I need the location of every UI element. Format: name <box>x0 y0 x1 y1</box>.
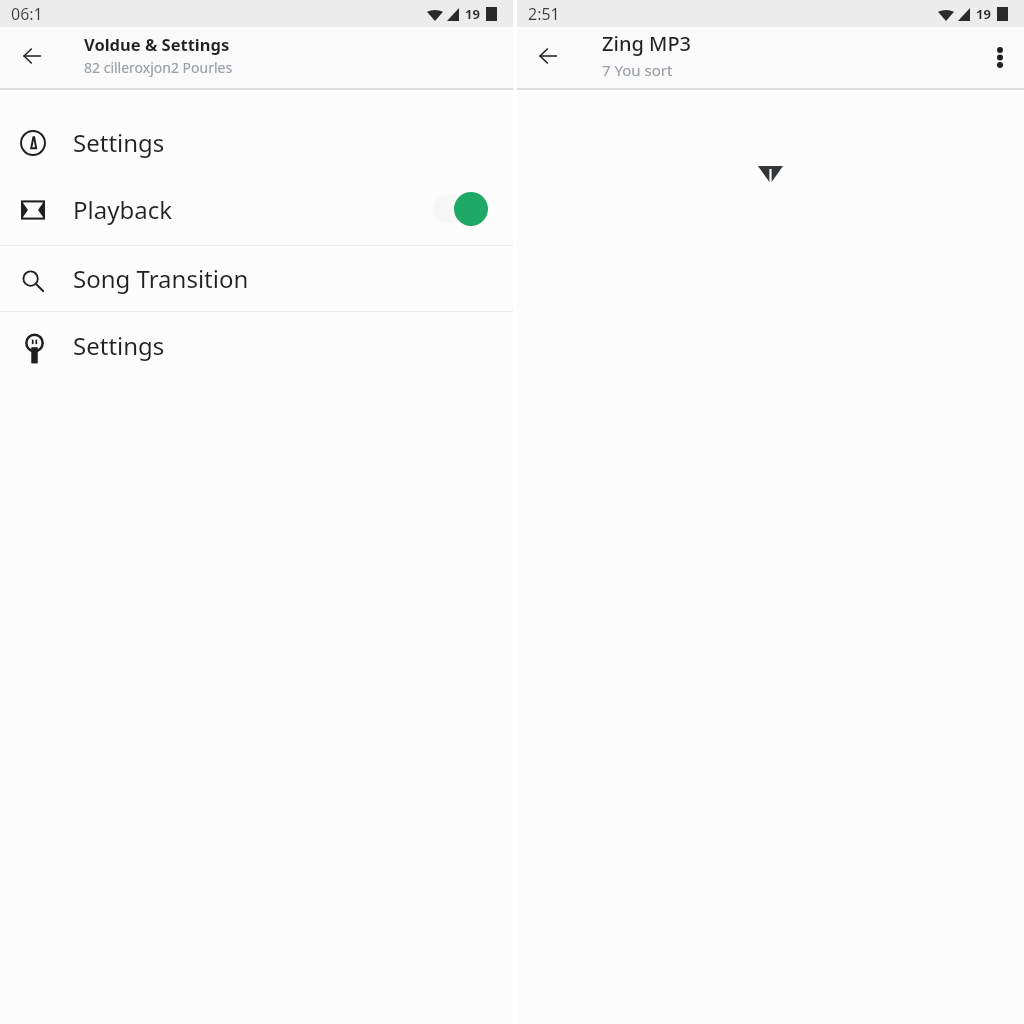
button[interactable]: Back <box>524 34 572 82</box>
button[interactable]: More options <box>978 36 1022 80</box>
button[interactable]: Song Transition <box>0 246 513 311</box>
button[interactable]: Playback <box>0 174 513 245</box>
button[interactable]: Settings <box>0 312 513 379</box>
staticText: Settings <box>73 329 165 362</box>
button[interactable]: Back <box>8 34 56 82</box>
staticText: Zing MP3 <box>602 30 692 57</box>
staticText: 2:51 <box>528 3 560 25</box>
staticText: 19 <box>465 5 480 23</box>
staticText: Song Transition <box>73 262 249 295</box>
staticText: 82 cilleroxjon2 Pourles <box>84 58 233 77</box>
staticText: 19 <box>976 5 991 23</box>
staticText: 7 You sort <box>602 60 673 80</box>
staticText: Settings <box>73 126 165 159</box>
staticText: Playback <box>73 193 172 226</box>
button[interactable]: Settings <box>0 111 513 174</box>
staticText: 06:1 <box>11 3 43 25</box>
staticText: Voldue & Settings <box>84 33 230 55</box>
